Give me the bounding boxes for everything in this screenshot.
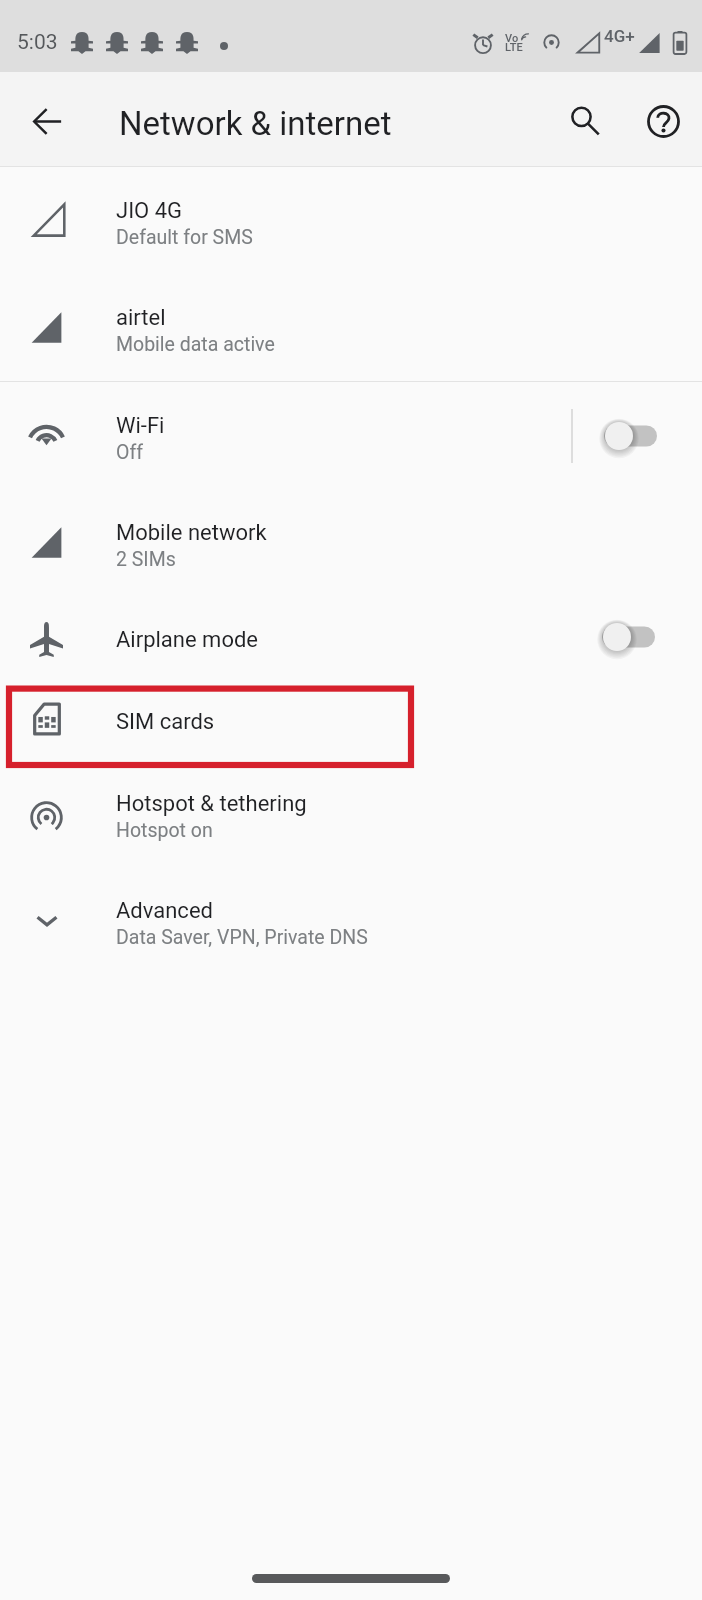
- staticText: airtel: [116, 305, 166, 331]
- staticText: Advanced: [116, 898, 213, 924]
- staticText: 5:03: [17, 30, 58, 55]
- button[interactable]: Airplane mode: [0, 596, 702, 678]
- staticText: 2 SIMs: [116, 548, 176, 571]
- staticText: SIM cards: [116, 709, 215, 735]
- staticText: Hotspot on: [116, 819, 213, 842]
- staticText: Mobile data active: [116, 333, 275, 356]
- staticText: Off: [116, 441, 143, 464]
- button[interactable]: Wi-Fi switch: [573, 396, 702, 476]
- staticText: Data Saver, VPN, Private DNS: [116, 926, 368, 949]
- button[interactable]: Airplane mode switch: [571, 597, 702, 677]
- button[interactable]: Help: [631, 87, 695, 151]
- staticText: Hotspot & tethering: [116, 791, 307, 817]
- staticText: Default for SMS: [116, 226, 253, 249]
- staticText: 4G+: [604, 26, 635, 46]
- button[interactable]: JIO 4G: [0, 167, 702, 274]
- button[interactable]: Mobile network: [0, 489, 702, 596]
- button[interactable]: Advanced: [0, 867, 702, 974]
- staticText: Airplane mode: [116, 627, 259, 653]
- button[interactable]: Wi-Fi: [0, 382, 702, 489]
- staticText: LTE: [505, 41, 523, 54]
- button[interactable]: airtel: [0, 274, 702, 381]
- staticText: Vo: [505, 32, 519, 45]
- button[interactable]: SIM cards: [0, 678, 702, 760]
- staticText: Mobile network: [116, 520, 267, 546]
- staticText: JIO 4G: [116, 198, 183, 224]
- staticText: Network & internet: [119, 104, 392, 143]
- button[interactable]: Navigate up: [14, 87, 78, 151]
- staticText: Wi-Fi: [116, 413, 165, 439]
- button[interactable]: Hotspot & tethering: [0, 760, 702, 867]
- button[interactable]: Search: [552, 87, 616, 151]
